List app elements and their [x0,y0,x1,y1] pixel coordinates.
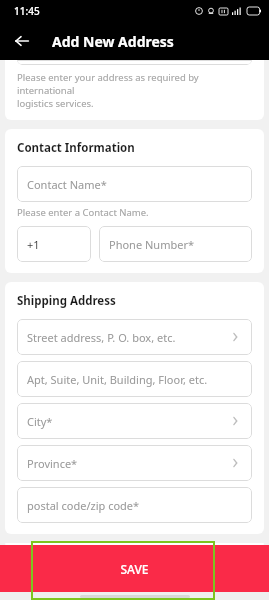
staticText: Shipping Address [17,293,116,309]
button[interactable]: Apt, Suite, Unit, Building, Floor, etc. [17,361,252,397]
staticText: Province* [27,456,78,471]
button[interactable]: Province* [17,445,252,481]
button[interactable]: SAVE [0,545,269,592]
staticText: postal code/zip code* [27,498,140,513]
button[interactable]: Phone Number* [99,226,252,262]
button[interactable]: postal code/zip code* [17,487,252,523]
button[interactable]: City* [17,403,252,439]
button[interactable]: Contact Name* [17,166,252,202]
staticText: Street address, P. O. box, etc. [27,330,176,345]
staticText: Add New Address [52,32,174,51]
button[interactable]: Back [8,27,36,55]
staticText: Phone Number* [109,237,194,252]
staticText: Please enter a Contact Name. [17,206,149,219]
button[interactable]: +1 [17,226,91,262]
staticText: City* [27,414,53,429]
button[interactable]: Street address, P. O. box, etc. [17,319,252,355]
staticText: Please enter your address as required by… [17,71,252,110]
staticText: SAVE [120,561,149,577]
staticText: +1 [27,237,40,252]
button[interactable]: Set as default shipping address [5,543,264,545]
staticText: Apt, Suite, Unit, Building, Floor, etc. [27,372,208,387]
staticText: 11:45 [14,4,40,18]
staticText: Contact Information [17,140,135,156]
staticText: Contact Name* [27,177,107,192]
